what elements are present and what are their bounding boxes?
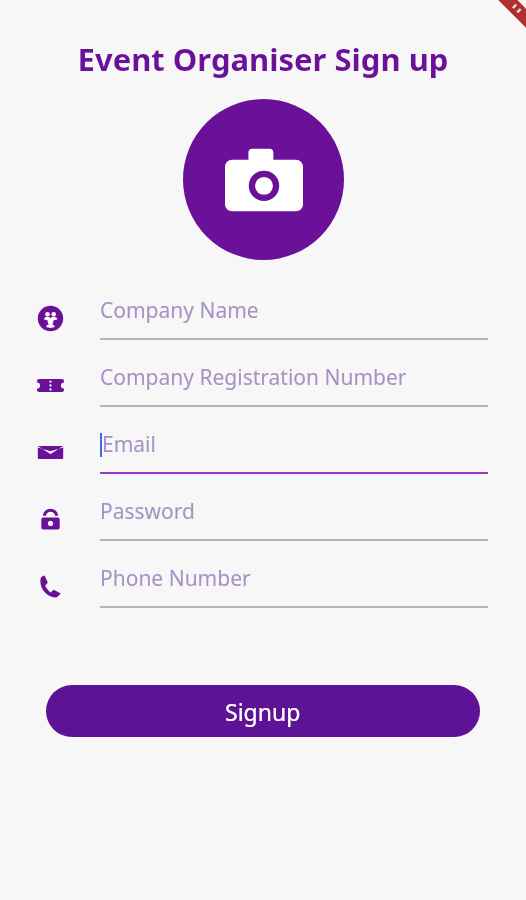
staticText: Company Name (100, 296, 259, 325)
staticText: Email (102, 430, 156, 459)
button[interactable]: Signup (46, 685, 480, 737)
staticText: Signup (225, 696, 301, 727)
staticText: Password (100, 497, 195, 526)
button[interactable]: Email (0, 430, 526, 497)
staticText: Event Organiser Sign up (0, 38, 526, 80)
staticText: Phone Number (100, 564, 251, 593)
button[interactable]: Company Name (0, 296, 526, 363)
button[interactable]: Password (0, 497, 526, 564)
button[interactable]: Phone Number (0, 564, 526, 631)
button[interactable]: Add profile photo (183, 99, 344, 260)
button[interactable]: Company Registration Number (0, 363, 526, 430)
staticText: Company Registration Number (100, 363, 407, 392)
